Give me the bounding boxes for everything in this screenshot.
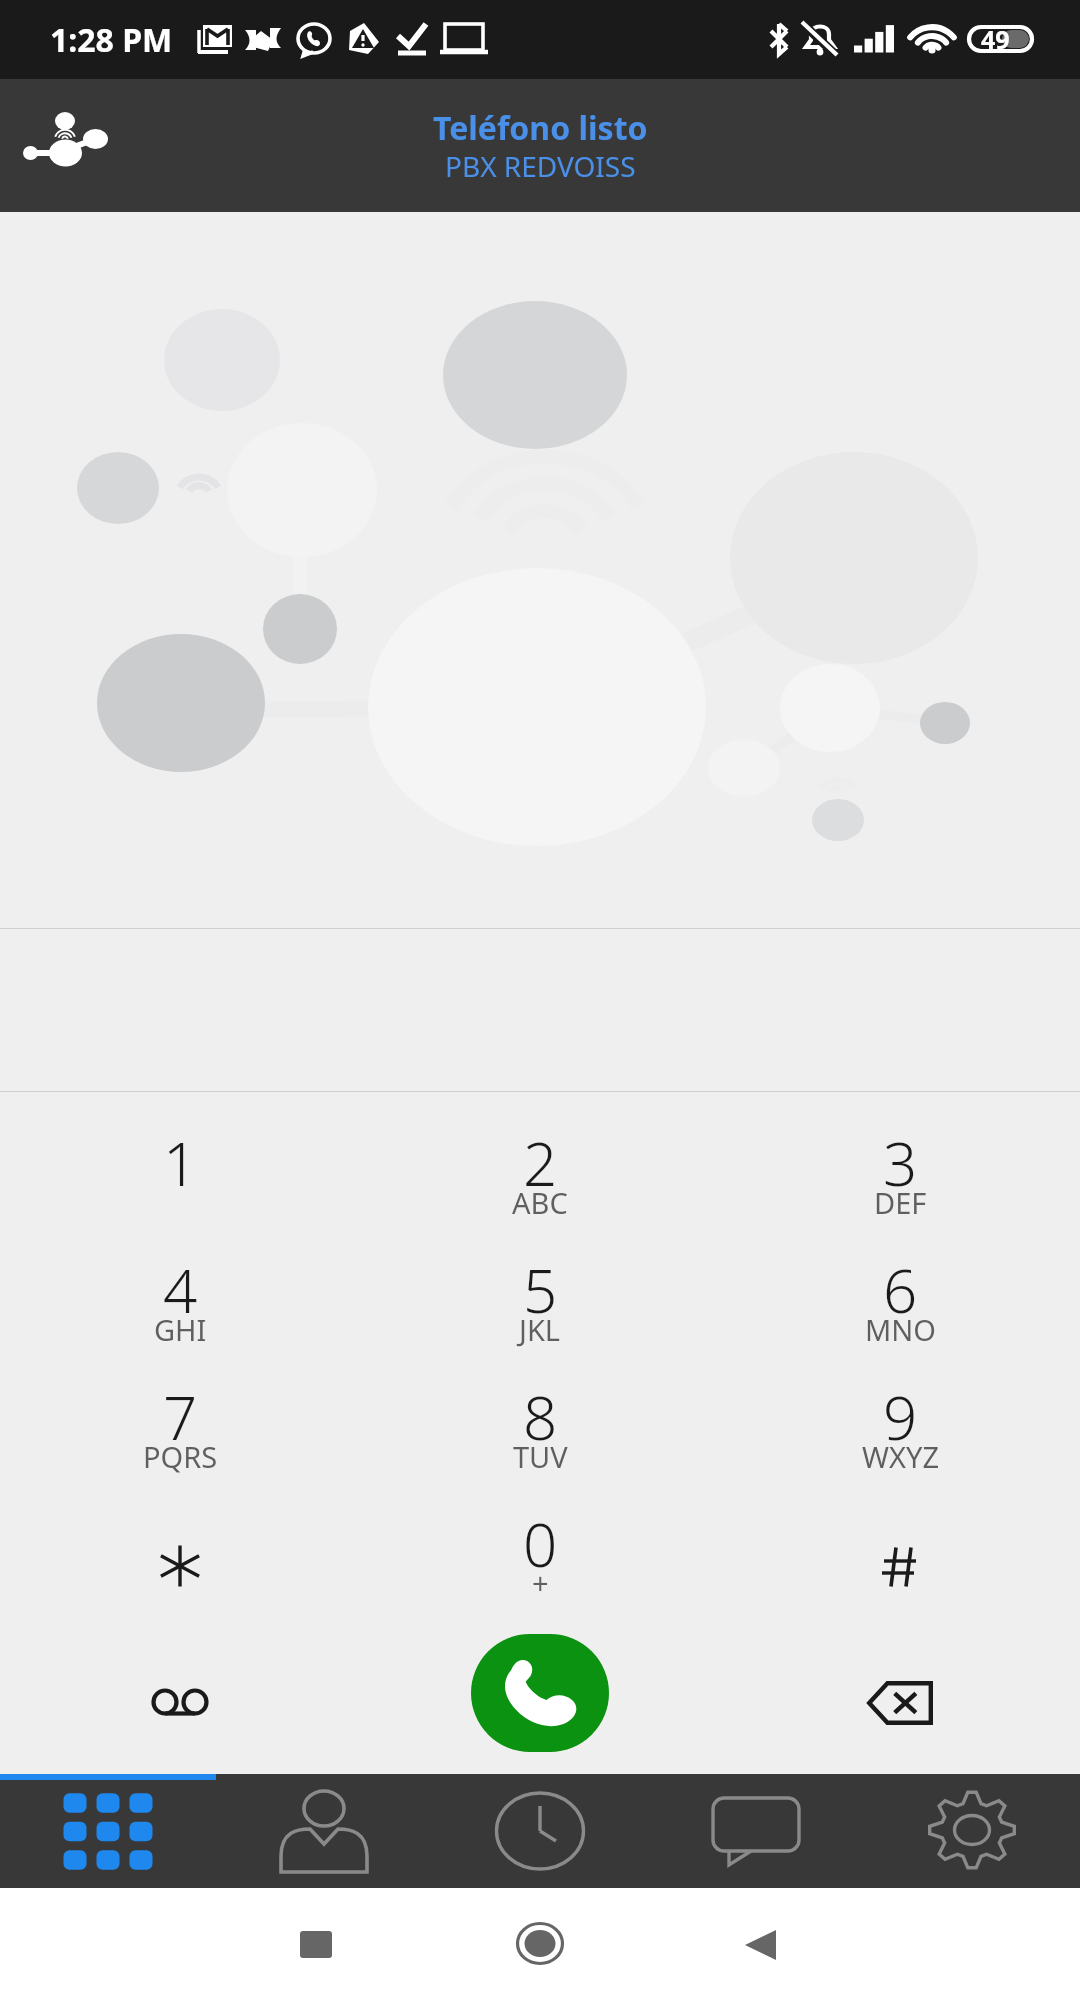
button[interactable]: Call bbox=[471, 1634, 609, 1752]
staticText: + bbox=[532, 1563, 549, 1602]
staticText: 9 bbox=[883, 1376, 918, 1458]
button[interactable]: 1 bbox=[0, 1122, 360, 1249]
staticText: 6 bbox=[883, 1249, 918, 1331]
button[interactable]: 4 bbox=[0, 1249, 360, 1376]
staticText: PBX REDVOISS bbox=[445, 147, 636, 185]
button[interactable]: Contacts bbox=[216, 1774, 432, 1888]
button[interactable]: 0 bbox=[360, 1503, 720, 1630]
staticText: MNO bbox=[865, 1310, 936, 1349]
button[interactable]: Pound bbox=[720, 1503, 1080, 1630]
staticText: DEF bbox=[874, 1183, 927, 1222]
button[interactable]: 8 bbox=[360, 1376, 720, 1503]
button[interactable]: Voicemail bbox=[0, 1630, 360, 1774]
button[interactable]: Dialpad bbox=[0, 1774, 216, 1888]
staticText: WXYZ bbox=[862, 1437, 939, 1476]
button[interactable]: Star bbox=[0, 1503, 360, 1630]
button[interactable]: Settings bbox=[864, 1774, 1080, 1888]
staticText: 0 bbox=[523, 1503, 558, 1585]
staticText: 1 bbox=[163, 1122, 198, 1204]
staticText: Teléfono listo bbox=[433, 106, 648, 150]
staticText: GHI bbox=[154, 1310, 207, 1349]
staticText: TUV bbox=[513, 1437, 568, 1476]
button[interactable]: 7 bbox=[0, 1376, 360, 1503]
button[interactable]: 3 bbox=[720, 1122, 1080, 1249]
staticText: 5 bbox=[523, 1249, 558, 1331]
button[interactable]: 6 bbox=[720, 1249, 1080, 1376]
staticText: 4 bbox=[163, 1249, 198, 1331]
staticText: 3 bbox=[883, 1122, 918, 1204]
staticText: 1:28 PM bbox=[50, 18, 173, 62]
staticText: 8 bbox=[523, 1376, 558, 1458]
staticText: JKL bbox=[519, 1310, 561, 1349]
staticText: 7 bbox=[163, 1376, 198, 1458]
button[interactable]: 2 bbox=[360, 1122, 720, 1249]
button[interactable]: 5 bbox=[360, 1249, 720, 1376]
staticText: ABC bbox=[512, 1183, 568, 1222]
button[interactable]: Backspace bbox=[720, 1630, 1080, 1774]
button[interactable]: 9 bbox=[720, 1376, 1080, 1503]
button[interactable]: Messages bbox=[648, 1774, 864, 1888]
staticText: 49 bbox=[981, 22, 1010, 56]
staticText: PQRS bbox=[143, 1437, 218, 1476]
button[interactable]: History bbox=[432, 1774, 648, 1888]
staticText: 2 bbox=[523, 1122, 558, 1204]
